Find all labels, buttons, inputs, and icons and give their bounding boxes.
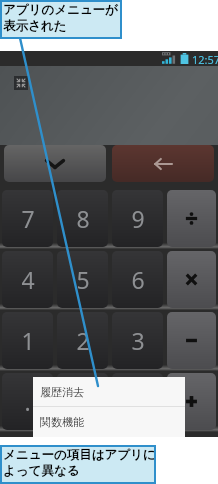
button[interactable]: Divide (167, 190, 216, 247)
staticText: 7 (21, 203, 35, 234)
button[interactable]: 履歴消去 (33, 377, 185, 406)
staticText: アプリのメニューが 表示された (3, 2, 118, 34)
button[interactable]: 2 (57, 312, 108, 369)
staticText: 5 (76, 264, 90, 295)
staticText: 3 (131, 325, 145, 356)
button[interactable]: 9 (112, 190, 163, 247)
button[interactable]: 5 (57, 251, 108, 308)
button[interactable]: 8 (57, 190, 108, 247)
button[interactable]: Multiply (167, 251, 216, 308)
button[interactable]: Delete (112, 145, 214, 182)
staticText: 1 (21, 325, 35, 356)
button[interactable]: 関数機能 (33, 407, 185, 437)
staticText: 2 (76, 325, 90, 356)
staticText: 履歴消去 (40, 385, 84, 399)
button[interactable]: アプリのメニューが 表示された (0, 0, 122, 39)
button[interactable]: Show history (4, 145, 106, 182)
button[interactable]: 3 (112, 312, 163, 369)
staticText: 8 (76, 203, 90, 234)
button[interactable]: = (112, 373, 163, 430)
button[interactable]: Subtract (167, 312, 216, 369)
button[interactable]: 4 (2, 251, 53, 308)
staticText: 9 (131, 203, 145, 234)
button[interactable]: 7 (2, 190, 53, 247)
button[interactable]: 0 (57, 373, 108, 430)
button[interactable]: メニューの項目はアプリに よって異なる (0, 445, 156, 484)
button[interactable]: 6 (112, 251, 163, 308)
staticText: メニューの項目はアプリに よって異なる (3, 447, 156, 479)
staticText: 関数機能 (40, 415, 84, 429)
staticText: 0 (76, 386, 90, 417)
button[interactable]: . (2, 373, 53, 430)
button[interactable]: Add (167, 373, 216, 430)
staticText: 4 (21, 264, 35, 295)
staticText: 6 (131, 264, 145, 295)
button[interactable]: Collapse display (14, 76, 28, 90)
staticText: 12:57 (192, 52, 218, 67)
button[interactable]: 1 (2, 312, 53, 369)
staticText: . (24, 386, 31, 417)
staticText: = (131, 386, 145, 417)
